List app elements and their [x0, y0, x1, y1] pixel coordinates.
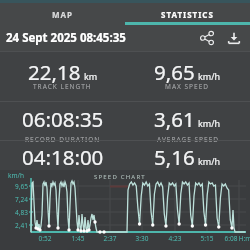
- staticText: 22,18: [28, 58, 81, 86]
- button[interactable]: [200, 31, 214, 45]
- staticText: MAP: [52, 9, 74, 20]
- staticText: 06:08:35: [22, 105, 104, 133]
- staticText: 0:52: [34, 234, 56, 243]
- staticText: km/h: [198, 155, 221, 167]
- staticText: SPEED CHART: [94, 173, 146, 181]
- staticText: AVERAGE SPEED: [157, 135, 219, 144]
- staticText: km/h: [198, 117, 221, 129]
- staticText: 4,83: [6, 208, 28, 217]
- staticText: MAX SPEED: [165, 82, 210, 91]
- staticText: 5,16: [154, 143, 195, 171]
- staticText: TRACK LENGTH: [33, 82, 92, 91]
- staticText: 3:30: [131, 234, 153, 243]
- button[interactable]: [227, 31, 241, 45]
- staticText: km/h: [8, 171, 24, 180]
- staticText: STATISTICS: [161, 9, 214, 20]
- staticText: 4:23: [164, 234, 186, 243]
- staticText: MOVEMENT DURATION: [18, 173, 107, 174]
- staticText: 2:37: [99, 234, 121, 243]
- staticText: 1:45: [67, 234, 89, 243]
- staticText: 5:15: [196, 234, 218, 243]
- staticText: 6:08: [220, 234, 242, 243]
- staticText: 7,24: [6, 195, 28, 204]
- staticText: 3,61: [154, 105, 195, 133]
- staticText: H:m: [234, 234, 250, 243]
- staticText: RECORD DURATION: [25, 135, 101, 144]
- staticText: 9,65: [6, 182, 28, 191]
- button[interactable]: MAP: [0, 3, 125, 25]
- staticText: km: [84, 70, 98, 82]
- staticText: 04:18:00: [22, 143, 104, 171]
- staticText: 2,41: [6, 221, 28, 230]
- staticText: km/h: [198, 70, 221, 82]
- staticText: 24 Sept 2025 08:45:35: [6, 30, 126, 46]
- button[interactable]: STATISTICS: [125, 3, 250, 25]
- staticText: 9,65: [154, 58, 195, 86]
